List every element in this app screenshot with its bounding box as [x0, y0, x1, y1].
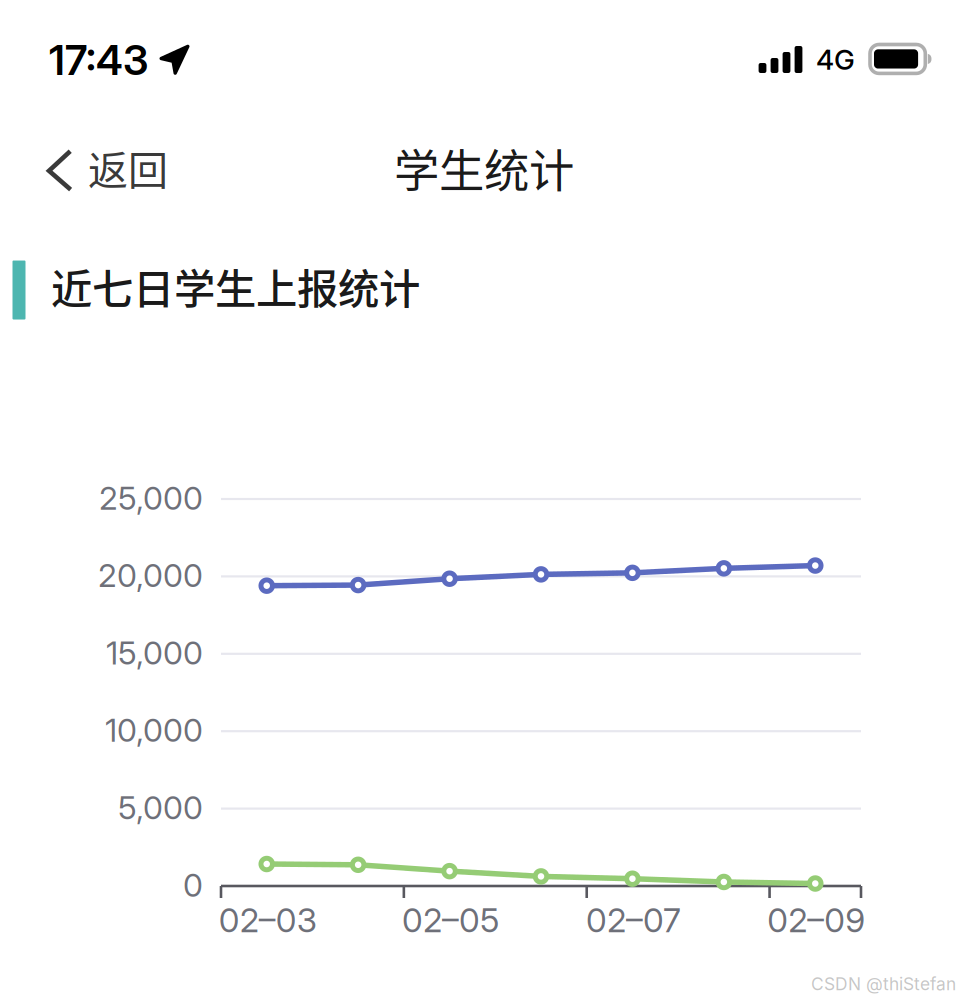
staticText: CSDN @thiStefan [811, 973, 956, 994]
staticText: 17:43 [49, 35, 148, 85]
staticText: 20,000 [98, 556, 203, 595]
staticText: 近七日学生上报统计 [51, 256, 420, 316]
staticText: 10,000 [105, 711, 203, 749]
staticText: 02–05 [402, 900, 499, 940]
staticText: 5,000 [118, 788, 203, 827]
staticText: 学生统计 [394, 135, 574, 201]
staticText: 15,000 [106, 633, 203, 672]
staticText: 返回 [88, 138, 168, 196]
staticText: 02–03 [219, 900, 317, 940]
button[interactable]: 返回 [0, 123, 200, 215]
staticText: 02–07 [586, 900, 681, 940]
staticText: 4G [816, 43, 855, 76]
staticText: 0 [183, 866, 203, 904]
staticText: 25,000 [99, 479, 203, 517]
staticText: 02–09 [767, 900, 865, 940]
